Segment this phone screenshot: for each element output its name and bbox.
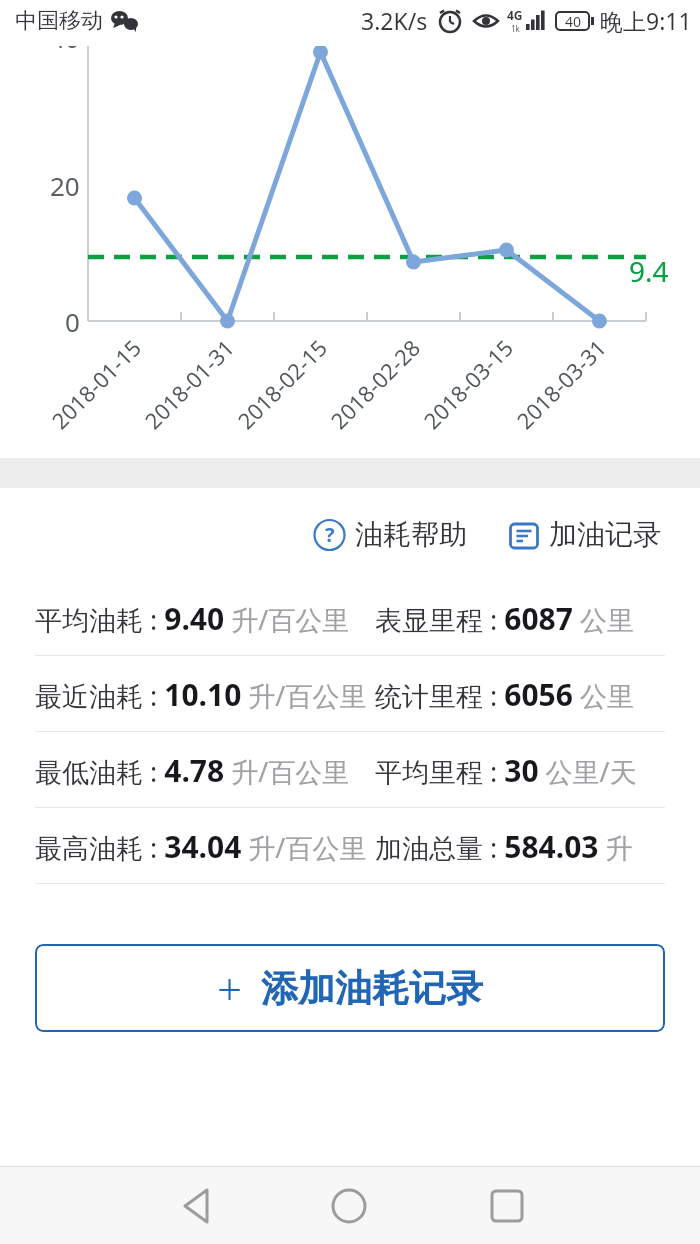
staticText: 1k [511,23,520,34]
button[interactable] [158,1167,238,1244]
staticText: 加油总量 : 584.03 升 [375,826,633,867]
staticText: 平均里程 : 30 公里/天 [375,750,637,791]
staticText: 晚上9:11 [600,5,692,36]
staticText: 最低油耗 : 4.78 升/百公里 [35,750,350,791]
staticText: ? [325,521,335,548]
button[interactable]: + [35,944,665,1032]
staticText: 40 [565,12,582,31]
staticText: 平均油耗 : 9.40 升/百公里 [35,598,350,639]
staticText: 中国移动 [15,7,103,35]
staticText: 加油记录 [549,517,661,552]
staticText: 最近油耗 : 10.10 升/百公里 [35,674,367,715]
button[interactable]: 加油记录 [505,513,665,556]
staticText: 表显里程 : 6087 公里 [375,598,634,639]
button[interactable] [309,1167,389,1244]
staticText: 统计里程 : 6056 公里 [375,674,634,715]
staticText: 4G [507,7,523,23]
staticText: 油耗帮助 [355,517,467,552]
staticText: + [217,958,243,1018]
staticText: 最高油耗 : 34.04 升/百公里 [35,826,367,867]
staticText: 添加油耗记录 [261,965,483,1012]
button[interactable]: ? [309,513,471,556]
button[interactable] [467,1167,547,1244]
staticText: 3.2K/s [361,5,428,36]
